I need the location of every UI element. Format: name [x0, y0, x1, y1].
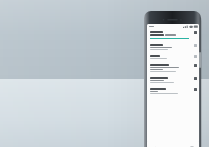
button[interactable]: Starred	[194, 77, 197, 80]
button[interactable]: Starred	[194, 31, 197, 34]
button[interactable]: Starred	[147, 86, 199, 97]
button[interactable]: Starred	[194, 64, 197, 67]
button[interactable]: Starred	[147, 29, 199, 42]
button[interactable]: Star	[147, 53, 199, 62]
button[interactable]: Starred	[147, 75, 199, 86]
button[interactable]: Starred	[194, 88, 197, 91]
button[interactable]: Starred	[147, 62, 199, 75]
button[interactable]: Recents	[189, 145, 194, 147]
button[interactable]: Star	[147, 42, 199, 53]
